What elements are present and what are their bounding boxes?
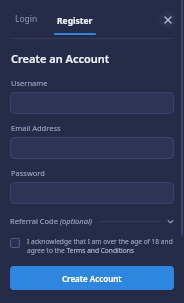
staticText: Create an Account (11, 51, 110, 66)
button[interactable] (10, 92, 174, 114)
staticText: I acknowledge that I am over the age of … (27, 237, 174, 255)
staticText: Username (11, 78, 48, 88)
button[interactable] (10, 182, 174, 204)
staticText: Create Account (62, 273, 122, 284)
button[interactable]: Register (54, 0, 96, 38)
button[interactable] (10, 137, 174, 159)
staticText: Password (11, 168, 45, 178)
staticText: Login (15, 13, 38, 25)
button[interactable]: Create Account (10, 266, 174, 290)
button[interactable]: Login (11, 0, 42, 38)
button[interactable]: Referral Code (optional) (10, 214, 174, 228)
button[interactable]: I acknowledge that I am over the age of … (10, 237, 174, 255)
staticText: Referral Code (optional) (10, 216, 93, 226)
button[interactable]: Close (159, 11, 176, 28)
staticText: Email Address (11, 123, 61, 133)
staticText: Register (57, 15, 93, 27)
